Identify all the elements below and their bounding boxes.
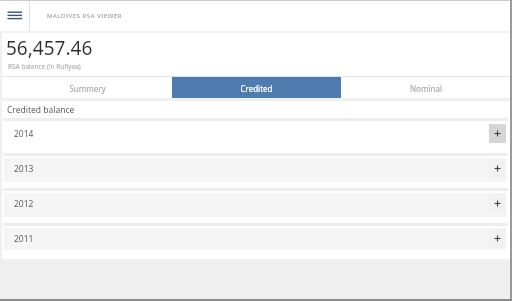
staticText: Summery (69, 83, 106, 94)
staticText: 2012 (14, 198, 34, 210)
staticText: RSA balance (in Rufiyaa) (8, 62, 81, 71)
button[interactable]: 2013 (4, 158, 506, 182)
button[interactable]: Expand 2014 (489, 124, 506, 143)
staticText: 2011 (14, 233, 34, 245)
button[interactable]: Nominal (341, 77, 510, 98)
staticText: Nominal (410, 83, 442, 94)
button[interactable]: 2012 (4, 193, 506, 217)
button[interactable]: Credited (172, 77, 341, 98)
staticText: 56,457.46 (6, 35, 93, 61)
button[interactable]: 2014 (4, 123, 506, 147)
button[interactable]: Summery (2, 77, 172, 98)
staticText: 2014 (14, 128, 34, 140)
button[interactable]: 2011 (4, 228, 506, 250)
button[interactable]: Expand 2011 (489, 229, 506, 248)
staticText: 2013 (14, 163, 34, 175)
staticText: Credited (240, 83, 273, 94)
staticText: Credited balance (7, 104, 75, 116)
button[interactable]: Expand 2012 (489, 194, 506, 213)
staticText: MALDIVES RSA VIEWER (47, 12, 123, 20)
button[interactable]: Open navigation menu (0, 1, 29, 31)
button[interactable]: Expand 2013 (489, 159, 506, 178)
